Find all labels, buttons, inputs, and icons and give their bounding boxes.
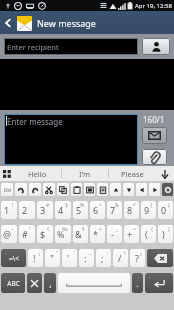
staticText: / [118, 252, 122, 264]
button[interactable]: I'm [62, 166, 108, 181]
button[interactable]: 0 [158, 201, 173, 219]
button[interactable]: Select all [84, 183, 95, 196]
button[interactable]: : [79, 249, 94, 267]
button[interactable]: Keyboard settings [27, 273, 42, 293]
button[interactable]: Redo [29, 183, 41, 196]
button[interactable]: 9 [141, 201, 156, 219]
button[interactable]: Move down [123, 183, 134, 196]
staticText: =\< [9, 254, 19, 263]
staticText: $ [40, 228, 46, 240]
staticText: ' [67, 252, 70, 264]
staticText: 4 [58, 204, 64, 216]
staticText: Please [121, 169, 144, 179]
button[interactable]: / [113, 249, 128, 267]
button[interactable]: Del [1, 183, 13, 196]
staticText: # [46, 202, 50, 209]
button[interactable]: . [132, 273, 143, 293]
button[interactable]: Cut [43, 183, 55, 196]
button[interactable]: $ [37, 225, 53, 243]
staticText: ? [135, 252, 139, 264]
button[interactable]: & [73, 225, 88, 243]
button[interactable]: 3 [37, 201, 53, 219]
button[interactable]: 4 [55, 201, 71, 219]
button[interactable]: * [90, 225, 105, 243]
staticText: ‘ [74, 250, 75, 257]
button[interactable]: Paste [71, 183, 82, 196]
staticText: Apr 19, 12:58 [135, 2, 172, 10]
button[interactable]: Move right [149, 183, 160, 196]
button[interactable]: - [107, 225, 122, 243]
button[interactable]: + [124, 225, 139, 243]
button[interactable]: ABC [1, 273, 25, 293]
button[interactable]: 6 [90, 201, 105, 219]
button[interactable]: Settings [162, 183, 173, 196]
staticText: ° [29, 226, 32, 233]
staticText: = [133, 226, 136, 233]
button[interactable]: 5 [73, 201, 88, 219]
staticText: . [136, 277, 139, 289]
button[interactable]: % [55, 225, 71, 243]
staticText: @ [3, 228, 12, 240]
staticText: ) [162, 228, 165, 240]
button[interactable]: Enter recipient [4, 38, 138, 55]
button[interactable]: Keyboard options [0, 166, 14, 181]
button[interactable]: " [45, 249, 60, 267]
button[interactable]: Send [142, 127, 167, 144]
staticText: · [107, 250, 109, 257]
button[interactable]: Enter [145, 273, 173, 293]
staticText: + [127, 228, 133, 240]
button[interactable]: =\< [1, 249, 26, 267]
button[interactable]: Space [58, 273, 130, 293]
staticText: 3 [40, 204, 46, 216]
staticText: ( [145, 228, 148, 240]
staticText: · [30, 202, 32, 209]
staticText: { [151, 226, 153, 233]
button[interactable]: ; [96, 249, 111, 267]
button[interactable]: Enter message [4, 114, 138, 165]
staticText: 9 [144, 204, 150, 216]
button[interactable]: Undo [15, 183, 27, 196]
staticText: ! [33, 252, 36, 264]
button[interactable]: ! [28, 249, 43, 267]
staticText: } [168, 226, 170, 233]
staticText: Enter message [7, 116, 63, 127]
staticText: ; [101, 252, 104, 264]
button[interactable]: 7 [107, 201, 122, 219]
button[interactable]: Backspace [147, 249, 173, 267]
button[interactable]: , [44, 273, 56, 293]
staticText: * [133, 202, 136, 209]
button[interactable]: ) [158, 225, 173, 243]
staticText: Hello [28, 169, 47, 179]
button[interactable]: Clipboard [97, 183, 108, 196]
button[interactable]: # [19, 225, 35, 243]
staticText: # [22, 228, 28, 240]
button[interactable]: ? [130, 249, 145, 267]
staticText: & [75, 228, 82, 240]
button[interactable]: Copy [57, 183, 69, 196]
staticText: : [84, 252, 87, 264]
button[interactable]: ' [62, 249, 77, 267]
staticText: - [111, 228, 114, 240]
button[interactable]: Move up [110, 183, 121, 196]
staticText: × [99, 226, 102, 233]
staticText: , [49, 277, 52, 289]
button[interactable]: 1 [1, 201, 17, 219]
staticText: % [57, 228, 65, 240]
staticText: “ [56, 250, 58, 257]
staticText: ~ [11, 226, 14, 233]
button[interactable]: 2 [19, 201, 35, 219]
button[interactable]: Please [109, 166, 155, 181]
button[interactable]: ( [141, 225, 156, 243]
staticText: 0 [161, 204, 167, 216]
staticText: \ [124, 250, 126, 257]
staticText: 7 [110, 204, 116, 216]
button[interactable]: Hide keyboard [155, 166, 174, 181]
button[interactable]: Choose contact [142, 38, 170, 55]
button[interactable]: @ [1, 225, 17, 243]
button[interactable]: Attach [142, 149, 167, 165]
button[interactable]: Hello [14, 166, 61, 181]
button[interactable]: Navigate up [0, 11, 16, 34]
button[interactable]: Move left [136, 183, 147, 196]
staticText: ¡ [39, 250, 41, 257]
button[interactable]: 8 [124, 201, 139, 219]
